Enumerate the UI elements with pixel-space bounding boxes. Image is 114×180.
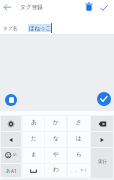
button[interactable]: [2, 2, 13, 13]
staticText: あ: [6, 168, 11, 174]
button[interactable]: [1, 116, 21, 131]
button[interactable]: ま: [23, 148, 44, 163]
button[interactable]: は: [68, 132, 90, 147]
button[interactable]: わ: [45, 164, 66, 177]
button[interactable]: や: [45, 148, 66, 163]
button[interactable]: 記: [1, 148, 21, 163]
staticText: か: [53, 119, 59, 126]
staticText: さ: [76, 119, 82, 126]
button[interactable]: あ: [23, 116, 44, 131]
button[interactable]: な: [45, 132, 66, 147]
staticText: や: [53, 151, 59, 158]
staticText: A1: [11, 168, 17, 174]
button[interactable]: [1, 132, 21, 147]
button[interactable]: [91, 132, 113, 147]
staticText: た: [31, 135, 37, 142]
button[interactable]: た: [23, 132, 44, 147]
button[interactable]: あ: [1, 164, 21, 177]
staticText: ま: [31, 151, 37, 158]
button[interactable]: ら: [68, 148, 90, 163]
staticText: タグ登録: [20, 4, 44, 11]
staticText: あ: [31, 119, 37, 126]
staticText: ら: [76, 151, 82, 158]
button[interactable]: 実行: [91, 148, 113, 178]
button[interactable]: [23, 164, 44, 177]
staticText: 、。？！: [71, 168, 88, 173]
staticText: な: [53, 135, 59, 142]
button[interactable]: か: [45, 116, 66, 131]
staticText: 実行: [98, 159, 107, 165]
button[interactable]: 、。？！: [68, 164, 90, 177]
staticText: ほねっこ: [29, 25, 51, 32]
button[interactable]: [91, 116, 113, 131]
staticText: は: [76, 135, 82, 142]
button[interactable]: さ: [68, 116, 90, 131]
button[interactable]: [97, 92, 111, 106]
staticText: タグ名: [3, 25, 18, 31]
button[interactable]: [83, 1, 95, 12]
button[interactable]: [98, 2, 110, 13]
staticText: わ: [53, 166, 59, 173]
button[interactable]: [5, 94, 17, 106]
staticText: 記: [13, 153, 17, 158]
